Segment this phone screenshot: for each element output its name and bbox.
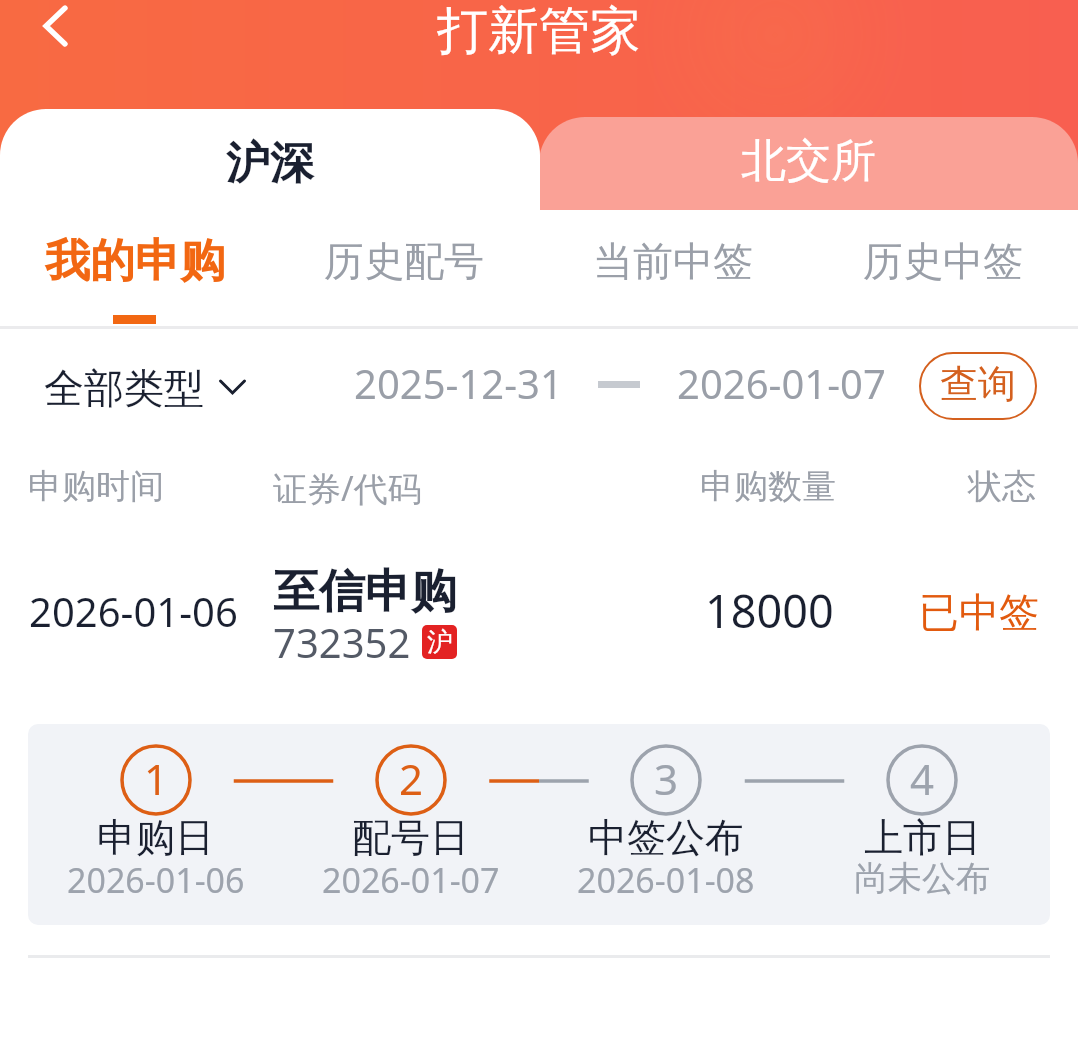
button[interactable]: 当前中签 — [538, 211, 808, 323]
staticText: 2 — [399, 750, 424, 807]
button[interactable]: 全部类型 — [44, 363, 247, 413]
staticText: 4 — [910, 750, 935, 807]
staticText: 状态 — [968, 465, 1036, 508]
staticText: 2026-01-06 — [29, 584, 238, 638]
staticText: 配号日 — [352, 813, 469, 862]
staticText: 3 — [654, 750, 679, 807]
button[interactable]: 我的申购 — [0, 211, 269, 323]
staticText: 1 — [144, 750, 169, 807]
staticText: 我的申购 — [45, 233, 225, 290]
staticText: 申购数量 — [700, 465, 836, 508]
button[interactable]: 查询 — [919, 352, 1037, 420]
staticText: 当前中签 — [593, 236, 753, 286]
staticText: 沪深 — [226, 136, 314, 191]
staticText: 申购日 — [97, 813, 214, 862]
staticText: 历史中签 — [863, 236, 1023, 286]
staticText: 历史配号 — [324, 236, 484, 286]
staticText: 732352 — [273, 615, 411, 669]
staticText: 至信申购 — [273, 563, 457, 621]
staticText: 2026-01-08 — [577, 857, 755, 903]
staticText: 北交所 — [741, 133, 876, 190]
button[interactable]: 历史中签 — [808, 211, 1078, 323]
staticText: 证券/代码 — [273, 465, 422, 511]
staticText: 已中签 — [919, 587, 1039, 637]
staticText: 沪 — [427, 626, 453, 659]
staticText: 打新管家 — [437, 0, 641, 59]
staticText: 18000 — [705, 580, 834, 641]
staticText: 申购时间 — [28, 465, 164, 508]
staticText: 2025-12-31 — [354, 356, 563, 410]
staticText: 中签公布 — [588, 813, 744, 862]
staticText: 2026-01-06 — [67, 857, 245, 903]
button[interactable]: 2026-01-06 — [0, 545, 1078, 675]
staticText: 2026-01-07 — [322, 857, 500, 903]
button[interactable]: 北交所 — [539, 117, 1078, 212]
staticText: 2026-01-07 — [677, 356, 886, 410]
staticText: 尚未公布 — [854, 857, 990, 900]
staticText: 全部类型 — [44, 363, 204, 413]
staticText: 查询 — [940, 360, 1016, 408]
button[interactable]: 历史配号 — [269, 211, 538, 323]
button[interactable]: 沪深 — [0, 109, 540, 219]
button[interactable]: Back — [16, 0, 96, 58]
staticText: 上市日 — [864, 813, 981, 862]
